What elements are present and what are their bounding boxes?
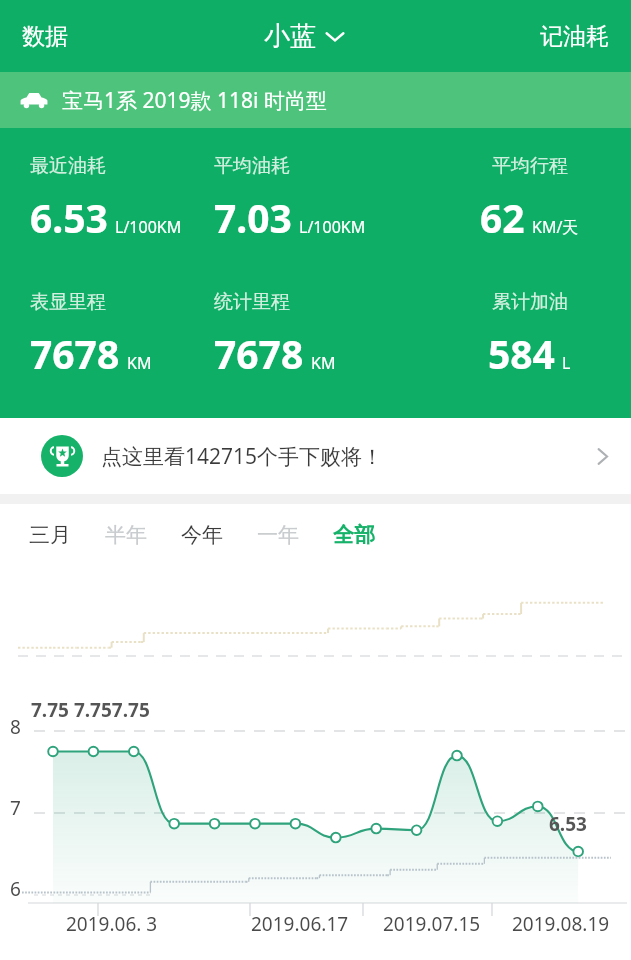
staticText: 6.53 [549,811,587,837]
staticText: 6 [10,876,21,902]
staticText: 小蓝 [264,20,316,53]
staticText: 584 [488,327,555,380]
staticText: KM [311,352,336,374]
staticText: 7 [10,795,21,821]
staticText: 2019.06.17 [251,911,349,937]
button[interactable]: 一年 [254,512,302,558]
staticText: 表显里程 [30,290,106,314]
button[interactable]: 三月 [26,512,74,558]
staticText: 统计里程 [214,290,290,314]
staticText: 今年 [181,522,223,548]
staticText: 7678 [214,327,304,380]
other: Vehicle [20,92,48,109]
staticText: 累计加油 [492,290,568,314]
staticText: 宝马1系 2019款 118i 时尚型 [62,86,327,115]
button[interactable]: 记油耗 [530,14,631,59]
staticText: 一年 [257,522,299,548]
button[interactable]: 全部 [330,512,378,558]
button[interactable]: Vehicle [0,72,631,128]
button[interactable]: 点这里看142715个手下败将！ [0,418,631,494]
staticText: KM [127,352,152,374]
staticText: L/100KM [115,216,182,238]
staticText: 7.03 [214,191,292,244]
staticText: KM/天 [532,216,579,238]
staticText: 2019.06. 3 [66,911,158,937]
staticText: 7678 [30,327,120,380]
staticText: L/100KM [299,216,366,238]
staticText: 平均油耗 [214,154,290,178]
staticText: 记油耗 [540,22,609,51]
staticText: 2019.08.19 [512,911,610,937]
staticText: 全部 [333,522,375,548]
staticText: 6.53 [30,191,108,244]
staticText: 最近油耗 [30,154,106,178]
button[interactable]: 小蓝 [78,20,530,53]
button[interactable]: 数据 [0,14,78,59]
staticText: 点这里看142715个手下败将！ [101,442,384,471]
staticText: 62 [480,191,525,244]
button[interactable]: 今年 [178,512,226,558]
staticText: 8 [10,714,21,740]
button[interactable]: 半年 [102,512,150,558]
staticText: 三月 [29,522,71,548]
staticText: 2019.07.15 [383,911,481,937]
staticText: 数据 [22,22,68,51]
staticText: 7.75 7.757.75 [31,697,150,723]
staticText: 平均行程 [492,154,568,178]
staticText: L [562,352,571,374]
staticText: 半年 [105,522,147,548]
